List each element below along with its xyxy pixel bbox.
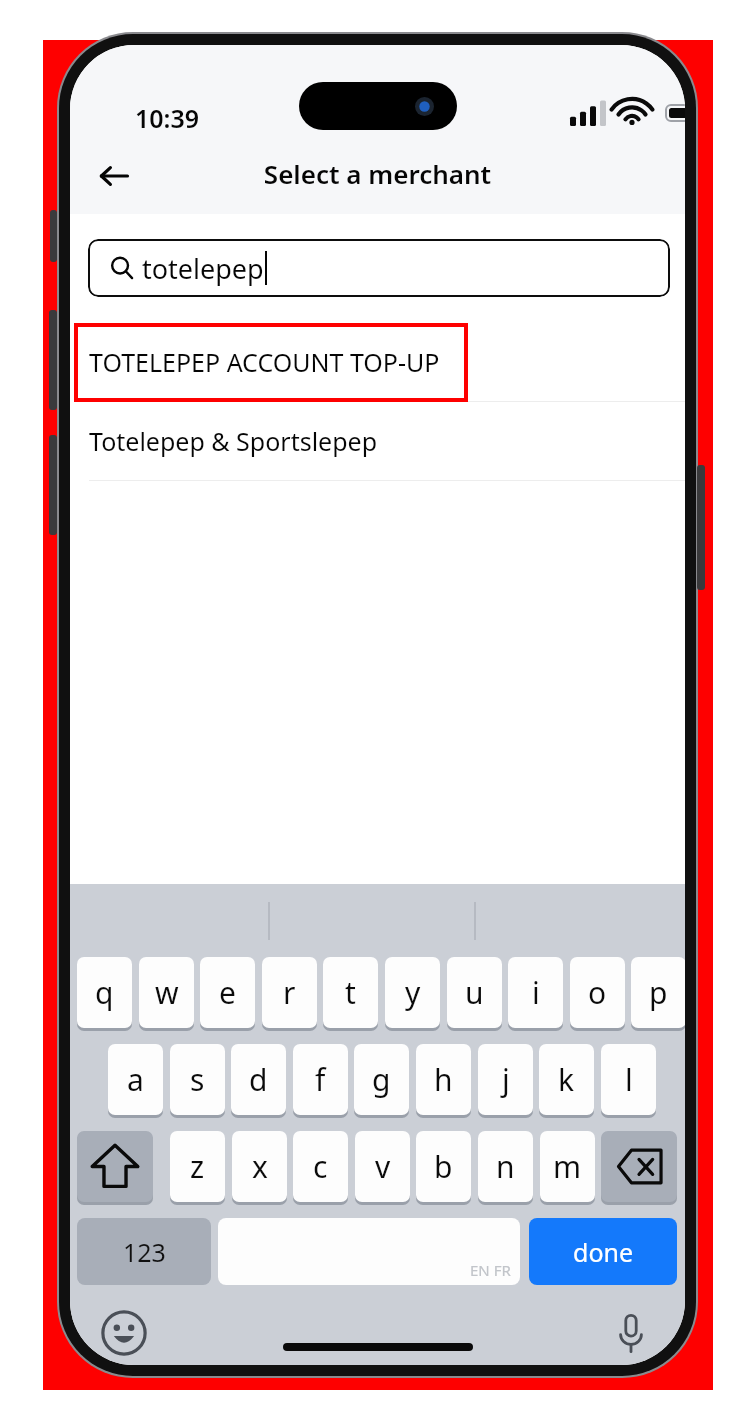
staticText: totelepep (142, 250, 264, 287)
staticText: g (372, 1059, 391, 1100)
button[interactable]: Dictation (605, 1307, 657, 1359)
button[interactable]: o (570, 957, 625, 1029)
button[interactable]: e (200, 957, 255, 1029)
staticText: 10:39 (135, 101, 200, 135)
staticText: l (625, 1059, 633, 1100)
staticText: i (532, 972, 540, 1013)
staticText: o (588, 972, 607, 1013)
staticText: q (95, 972, 114, 1013)
staticText: d (249, 1059, 268, 1100)
staticText: TOTELEPEP ACCOUNT TOP-UP (89, 345, 440, 379)
staticText: v (375, 1146, 391, 1187)
staticText: b (434, 1146, 453, 1187)
button[interactable]: y (385, 957, 440, 1029)
button[interactable]: p (631, 957, 685, 1029)
staticText: j (502, 1059, 510, 1100)
button[interactable]: totelepep (88, 239, 670, 297)
button[interactable]: c (293, 1131, 348, 1203)
button[interactable]: r (262, 957, 317, 1029)
button[interactable]: g (354, 1044, 409, 1116)
button[interactable]: done (529, 1218, 677, 1285)
staticText: u (465, 972, 484, 1013)
staticText: x (252, 1146, 268, 1187)
staticText: Totelepep & Sportslepep (89, 424, 378, 458)
button[interactable]: i (508, 957, 563, 1029)
button[interactable]: k (539, 1044, 594, 1116)
button[interactable]: w (139, 957, 194, 1029)
button[interactable]: x (232, 1131, 287, 1203)
staticText: e (219, 972, 236, 1013)
button[interactable]: 123 (77, 1218, 211, 1285)
staticText: h (434, 1059, 453, 1100)
button[interactable]: l (601, 1044, 656, 1116)
button[interactable]: Totelepep & Sportslepep (70, 402, 685, 480)
staticText: t (345, 972, 356, 1013)
button[interactable]: TOTELEPEP ACCOUNT TOP-UP (70, 323, 685, 401)
staticText: c (313, 1146, 328, 1187)
staticText: n (496, 1146, 515, 1187)
button[interactable]: Space (218, 1218, 520, 1285)
button[interactable]: n (478, 1131, 533, 1203)
button[interactable]: Backspace (601, 1131, 677, 1203)
button[interactable]: m (540, 1131, 595, 1203)
button[interactable]: j (478, 1044, 533, 1116)
staticText: m (553, 1146, 582, 1187)
button[interactable]: z (170, 1131, 225, 1203)
staticText: w (155, 972, 179, 1013)
button[interactable]: f (293, 1044, 348, 1116)
button[interactable]: d (231, 1044, 286, 1116)
staticText: z (190, 1146, 205, 1187)
staticText: s (190, 1059, 205, 1100)
staticText: 123 (123, 1235, 166, 1269)
staticText: Select a merchant (70, 156, 685, 191)
button[interactable]: q (77, 957, 132, 1029)
button[interactable]: Emoji (100, 1309, 148, 1357)
button[interactable]: b (416, 1131, 471, 1203)
button[interactable]: Back (84, 146, 144, 206)
button[interactable]: s (170, 1044, 225, 1116)
staticText: done (573, 1235, 634, 1269)
staticText: r (283, 972, 296, 1013)
staticText: f (315, 1059, 326, 1100)
staticText: p (649, 972, 668, 1013)
button[interactable]: h (416, 1044, 471, 1116)
button[interactable]: Shift (77, 1131, 153, 1203)
button[interactable]: a (108, 1044, 163, 1116)
staticText: k (558, 1059, 575, 1100)
button[interactable]: u (447, 957, 502, 1029)
button[interactable]: t (323, 957, 378, 1029)
staticText: y (405, 972, 421, 1013)
staticText: EN FR (470, 1260, 511, 1280)
button[interactable]: v (355, 1131, 410, 1203)
staticText: a (127, 1059, 144, 1100)
